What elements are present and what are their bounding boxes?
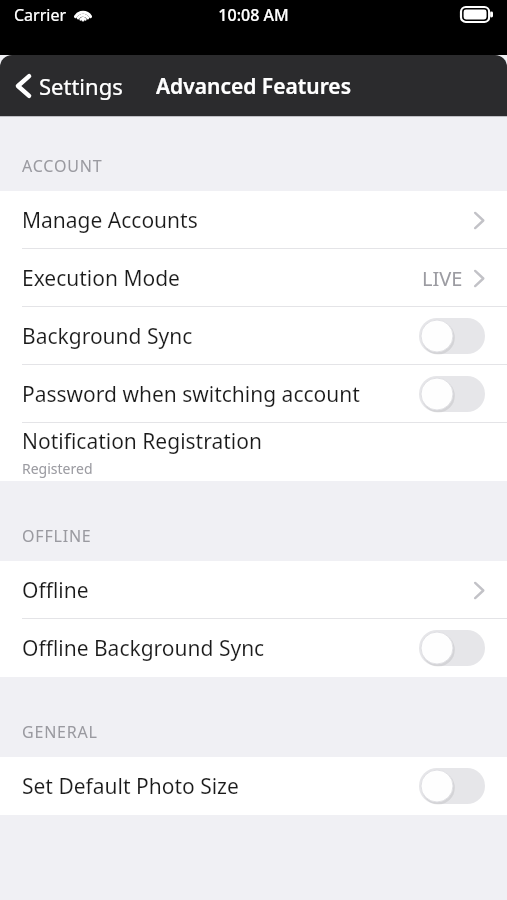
staticText: 10:08 AM (218, 4, 289, 26)
staticText: Background Sync (22, 322, 193, 351)
staticText: Settings (39, 71, 123, 101)
staticText: Offline (22, 576, 89, 605)
staticText: Set Default Photo Size (22, 772, 239, 801)
button[interactable]: Toggle Background Sync (419, 318, 485, 354)
button[interactable]: Toggle Password when switching account (419, 376, 485, 412)
button[interactable]: Offline (0, 561, 507, 619)
staticText: OFFLINE (22, 525, 92, 547)
button[interactable]: Set Default Photo Size (0, 757, 507, 815)
staticText: Password when switching account (22, 380, 360, 409)
staticText: Notification Registration (22, 427, 262, 456)
button[interactable]: Background Sync (0, 307, 507, 365)
button[interactable]: Toggle Offline Background Sync (419, 630, 485, 666)
staticText: Advanced Features (156, 72, 351, 101)
staticText: Manage Accounts (22, 206, 198, 235)
staticText: Offline Background Sync (22, 634, 265, 663)
staticText: GENERAL (22, 721, 98, 743)
button[interactable]: Toggle Set Default Photo Size (419, 768, 485, 804)
staticText: LIVE (422, 265, 463, 292)
staticText: Registered (22, 459, 93, 478)
button[interactable]: Manage Accounts (0, 191, 507, 249)
button[interactable]: Password when switching account (0, 365, 507, 423)
staticText: Carrier (14, 4, 67, 26)
button[interactable]: Notification Registration (0, 423, 507, 481)
staticText: ACCOUNT (22, 155, 103, 177)
button[interactable]: Settings (0, 55, 135, 117)
button[interactable]: Offline Background Sync (0, 619, 507, 677)
button[interactable]: Execution Mode (0, 249, 507, 307)
staticText: Execution Mode (22, 264, 180, 293)
